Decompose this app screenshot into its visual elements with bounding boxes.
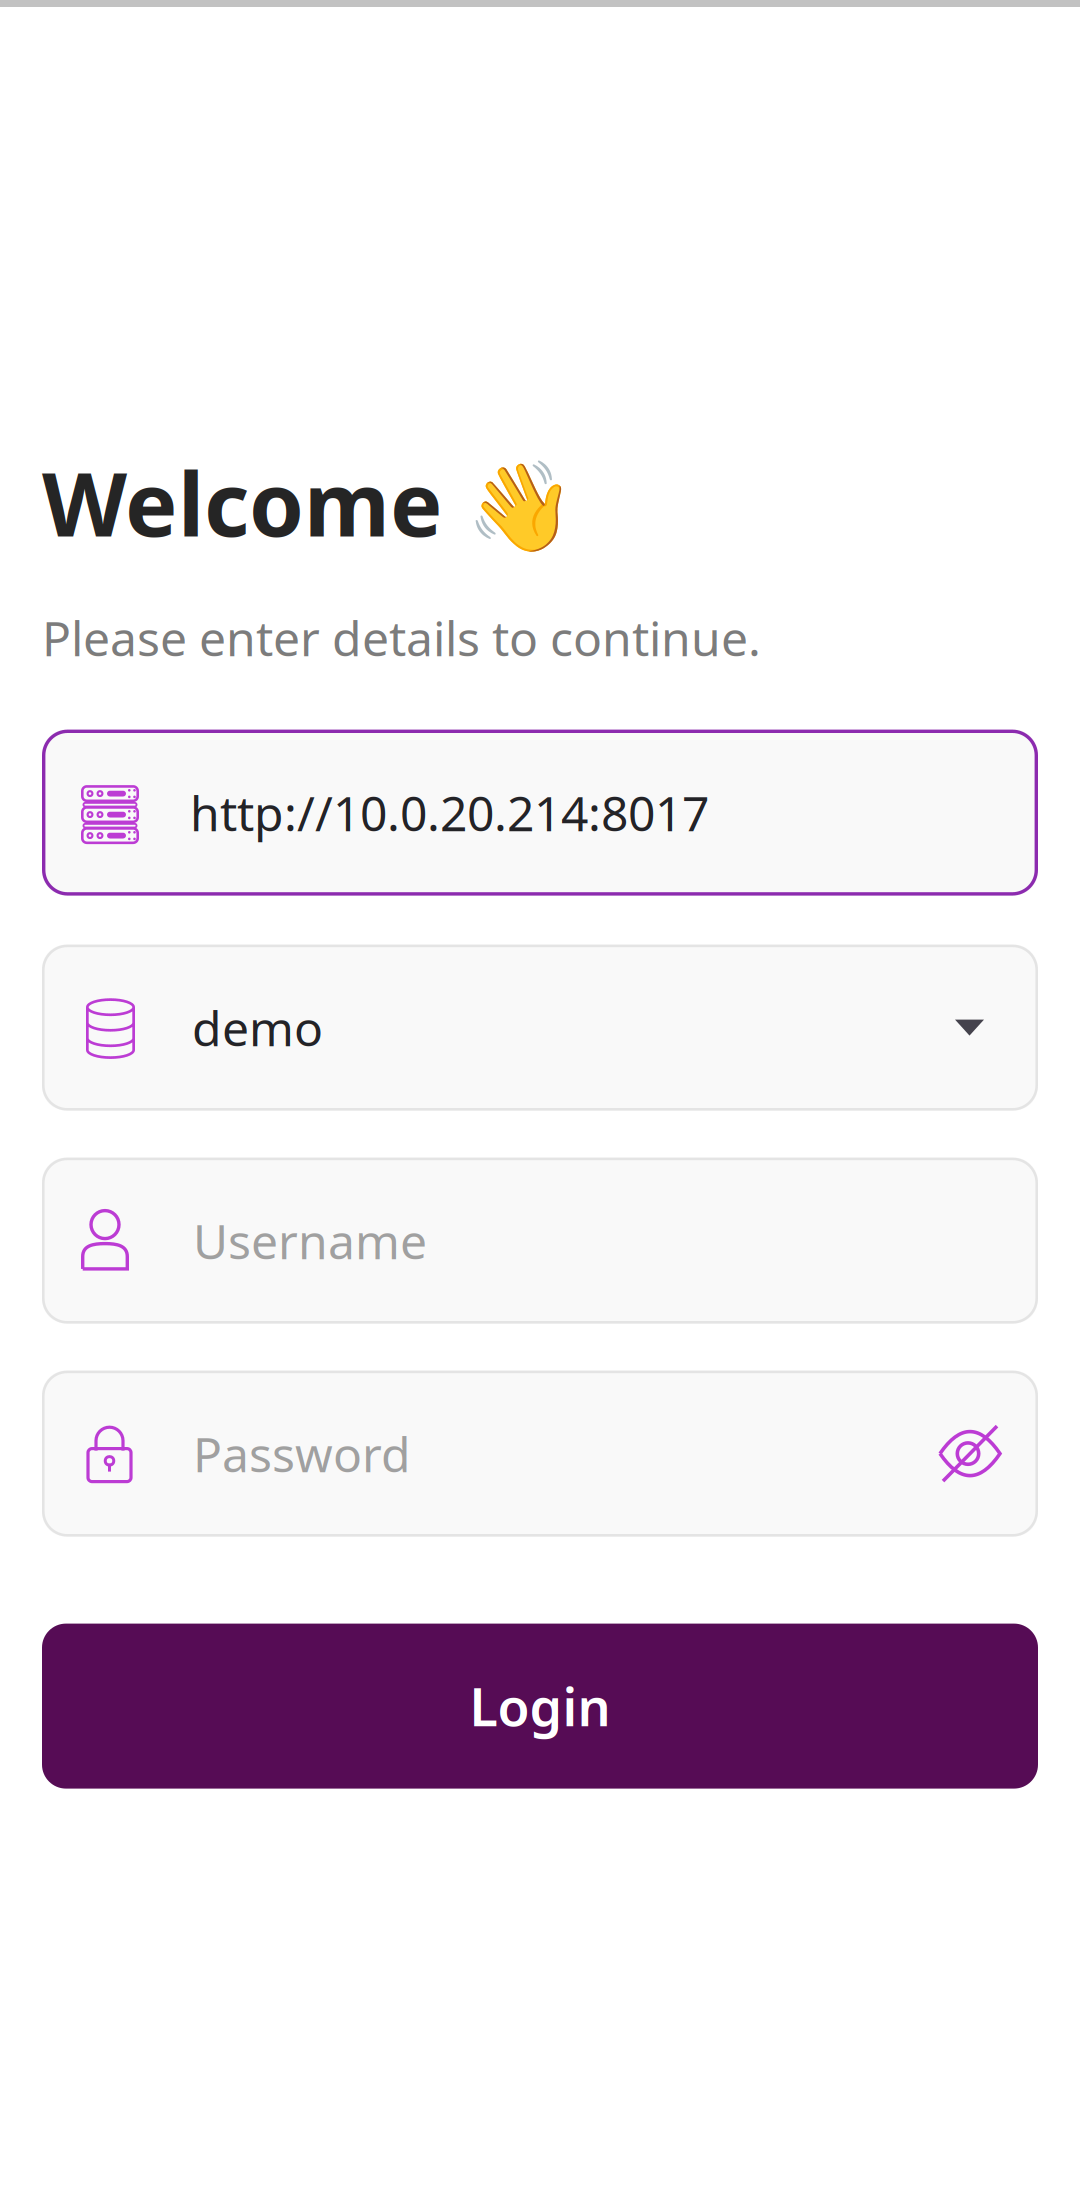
- button[interactable]: demo: [42, 945, 1038, 1111]
- staticText: Please enter details to continue.: [42, 606, 761, 670]
- button[interactable]: Password: [42, 1371, 1038, 1537]
- staticText: Password: [193, 1422, 411, 1485]
- button[interactable]: http://10.0.20.214:8017: [42, 730, 1038, 896]
- button[interactable]: Login: [42, 1624, 1038, 1789]
- staticText: http://10.0.20.214:8017: [190, 781, 709, 844]
- staticText: Username: [193, 1209, 427, 1272]
- button[interactable]: Username: [42, 1158, 1038, 1324]
- staticText: Welcome 👋: [42, 444, 576, 561]
- button[interactable]: Show password: [917, 1384, 1038, 1523]
- staticText: demo: [192, 996, 323, 1059]
- staticText: Login: [469, 1672, 610, 1741]
